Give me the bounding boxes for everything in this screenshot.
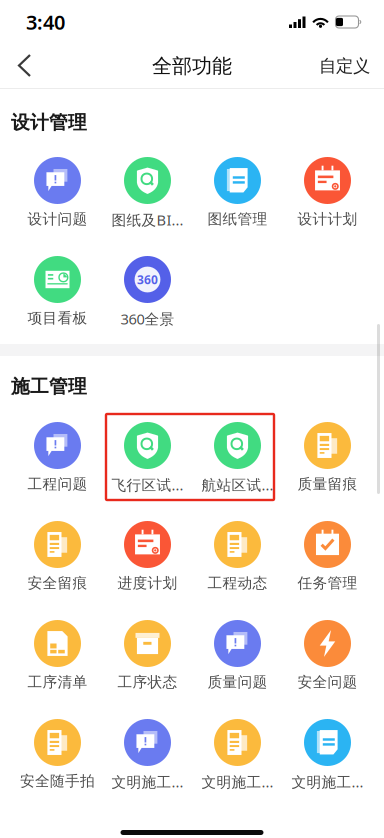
staticText: 任务管理 [297,574,357,592]
staticText: 文明施工... [291,772,363,791]
button[interactable]: 设计计划 [282,135,372,234]
button[interactable]: 安全问题 [282,598,372,697]
staticText: 360 [137,271,158,287]
staticText: 工程动态 [207,574,267,592]
button[interactable]: 图纸管理 [192,135,282,234]
staticText: 安全随手拍 [20,772,95,790]
button[interactable]: 图纸及BI... [102,135,192,234]
button[interactable]: 飞行区试... [102,400,192,499]
button[interactable]: 航站区试... [192,400,282,499]
button[interactable]: 360 [102,234,192,333]
staticText: 航站区试... [201,475,273,494]
button[interactable]: 自定义 [309,44,380,88]
staticText: 自定义 [319,55,370,77]
staticText: 3:40 [26,9,65,35]
staticText: 设计问题 [27,210,87,228]
staticText: 安全问题 [297,673,357,691]
button[interactable]: 质量留痕 [282,400,372,499]
staticText: 进度计划 [117,574,177,592]
button[interactable]: 项目看板 [12,234,102,333]
button[interactable]: 工序清单 [12,598,102,697]
button[interactable]: 文明施工... [192,697,282,796]
staticText: 设计计划 [297,210,357,228]
staticText: 文明施工... [111,772,183,791]
staticText: 图纸管理 [207,210,267,228]
button[interactable]: 质量问题 [192,598,282,697]
staticText: 文明施工... [201,772,273,791]
staticText: 质量留痕 [297,475,357,493]
button[interactable]: 工程问题 [12,400,102,499]
staticText: 安全留痕 [27,574,87,592]
button[interactable]: 安全随手拍 [12,697,102,796]
staticText: 设计管理 [11,111,87,134]
button[interactable]: 工程动态 [192,499,282,598]
button[interactable]: 设计问题 [12,135,102,234]
staticText: 飞行区试... [111,475,183,494]
staticText: 图纸及BI... [111,210,183,229]
staticText: 工序状态 [117,673,177,691]
staticText: 施工管理 [11,375,87,398]
button[interactable]: 安全留痕 [12,499,102,598]
staticText: 工程问题 [27,475,87,493]
staticText: 全部功能 [152,54,232,78]
button[interactable]: 工序状态 [102,598,192,697]
button[interactable]: 文明施工... [102,697,192,796]
staticText: 360全景 [120,309,174,328]
staticText: 工序清单 [27,673,87,691]
button[interactable]: 任务管理 [282,499,372,598]
staticText: 质量问题 [207,673,267,691]
button[interactable]: Back [4,44,48,88]
button[interactable]: 进度计划 [102,499,192,598]
staticText: 项目看板 [27,309,87,327]
button[interactable]: 文明施工... [282,697,372,796]
